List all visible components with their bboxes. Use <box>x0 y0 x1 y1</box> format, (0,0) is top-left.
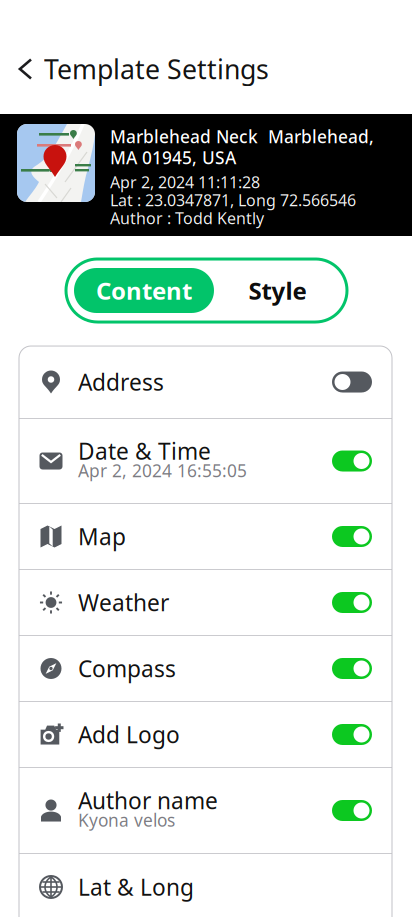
staticText: Style <box>248 275 306 306</box>
button[interactable]: Lat & Long <box>19 854 392 917</box>
staticText: Lat & Long <box>78 872 194 902</box>
button[interactable]: Map <box>19 504 392 569</box>
staticText: Address <box>78 367 164 397</box>
staticText: Apr 2, 2024 11:11:28 <box>110 171 260 193</box>
staticText: MA 01945, USA <box>110 146 236 169</box>
staticText: Apr 2, 2024 16:55:05 <box>78 459 247 482</box>
staticText: Marblehead Neck Marblehead, <box>110 125 374 148</box>
button[interactable]: Compass <box>19 636 392 701</box>
staticText: Add Logo <box>78 719 180 749</box>
staticText: Template Settings <box>44 51 269 87</box>
staticText: Weather <box>78 587 169 617</box>
staticText: Date & Time <box>78 436 211 466</box>
staticText: Compass <box>78 653 176 683</box>
staticText: Author name <box>78 785 218 815</box>
button[interactable]: Template Settings <box>0 47 412 91</box>
staticText: Author : Todd Kently <box>110 207 264 229</box>
staticText: Content <box>96 275 192 306</box>
button[interactable]: Weather <box>19 570 392 635</box>
staticText: Lat : 23.0347871, Long 72.566546 <box>110 189 356 211</box>
button[interactable]: Author name <box>19 768 392 853</box>
button[interactable]: Content <box>74 268 214 313</box>
button[interactable]: Style <box>214 268 341 313</box>
button[interactable]: Address <box>19 346 392 418</box>
button[interactable]: Date & Time <box>19 419 392 503</box>
staticText: Map <box>78 521 126 551</box>
staticText: Kyona velos <box>78 808 175 831</box>
button[interactable]: Add Logo <box>19 702 392 767</box>
